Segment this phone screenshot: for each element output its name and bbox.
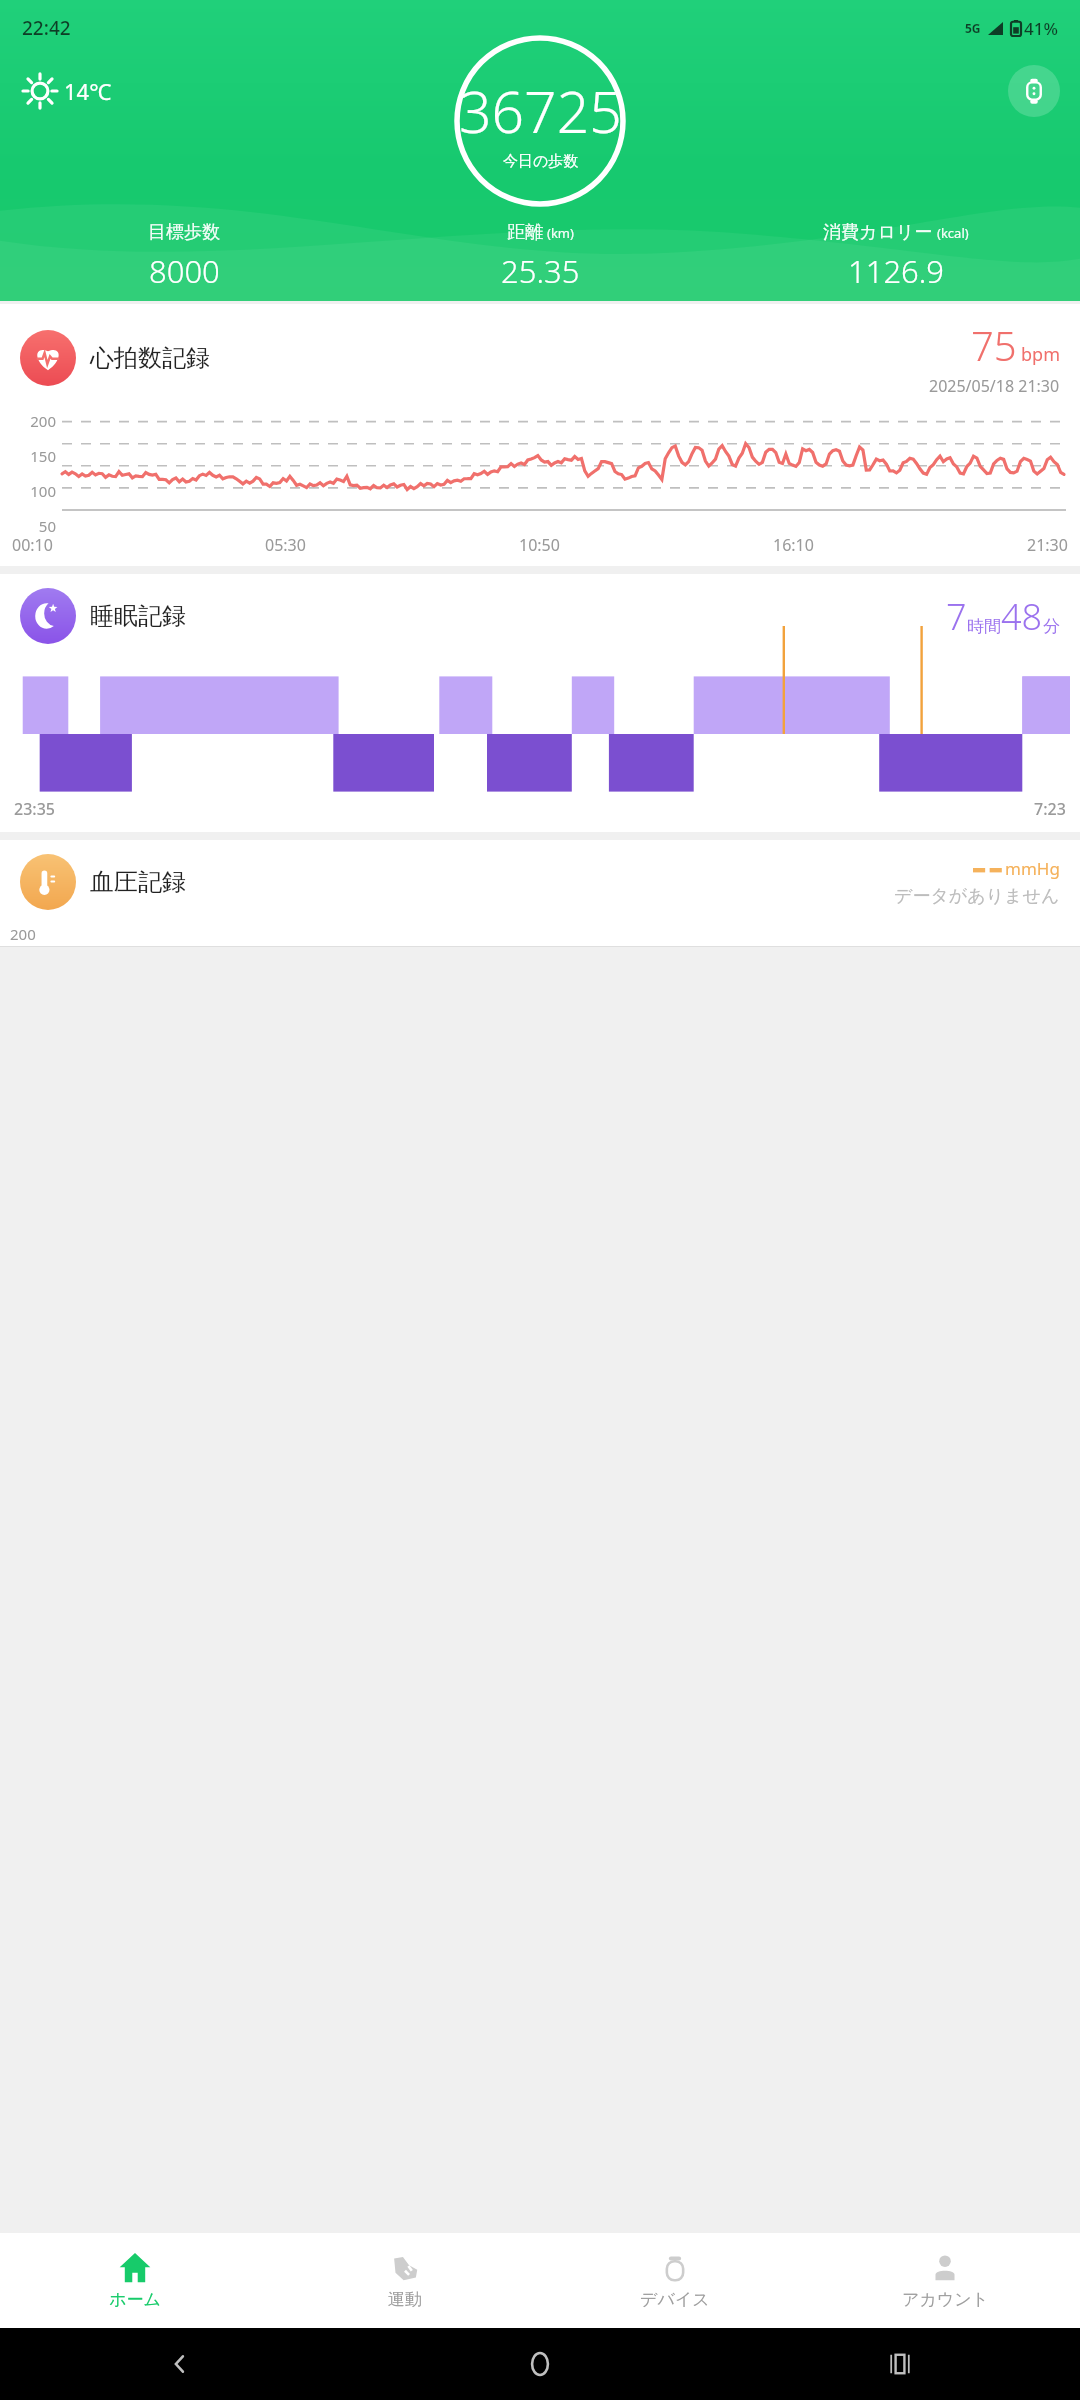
staticText: デバイス	[640, 2289, 710, 2310]
staticText: 14℃	[64, 76, 112, 106]
staticText: 運動	[388, 2289, 422, 2310]
button[interactable]: アカウント	[810, 2233, 1080, 2328]
button[interactable]: 消費カロリー	[718, 221, 1074, 292]
staticText: 25.35	[501, 250, 580, 292]
button[interactable]: 目標歩数	[6, 221, 362, 292]
staticText: 41%	[1024, 17, 1058, 40]
staticText: データがありません	[894, 885, 1060, 908]
staticText: bpm	[1021, 342, 1060, 367]
staticText: 75	[971, 318, 1017, 372]
button[interactable]: デバイス	[1008, 65, 1060, 117]
staticText: 36725	[459, 72, 622, 150]
staticText: ホーム	[109, 2289, 161, 2310]
button[interactable]: ホーム	[0, 2233, 270, 2328]
staticText: 10:50	[519, 534, 560, 556]
staticText: 100	[30, 481, 56, 501]
staticText: 23:35	[14, 798, 55, 820]
staticText: 200	[10, 924, 36, 944]
staticText: 目標歩数	[148, 221, 220, 244]
staticText: 1126.9	[848, 250, 945, 292]
staticText: 00:10	[12, 534, 53, 556]
staticText: 8000	[149, 250, 220, 292]
staticText: 距離	[507, 221, 543, 244]
button[interactable]: デバイス	[540, 2233, 810, 2328]
staticText: 16:10	[773, 534, 814, 556]
staticText: 22:42	[22, 15, 71, 41]
staticText: 7:23	[1034, 798, 1066, 820]
staticText: 200	[30, 411, 56, 431]
button[interactable]: 心拍数記録	[0, 304, 1080, 566]
staticText: 50	[38, 516, 56, 534]
staticText: 7	[946, 592, 967, 641]
staticText: 150	[30, 446, 56, 466]
button[interactable]: Recents	[720, 2328, 1080, 2400]
button[interactable]: 距離	[362, 221, 718, 292]
staticText: mmHg	[1005, 857, 1060, 880]
staticText: 消費カロリー	[823, 221, 933, 244]
staticText: 分	[1043, 616, 1060, 637]
staticText: 2025/05/18 21:30	[929, 375, 1060, 397]
button[interactable]: Back	[0, 2328, 360, 2400]
staticText: 睡眠記録	[90, 601, 186, 631]
staticText: 血圧記録	[90, 867, 186, 897]
staticText: 心拍数記録	[90, 343, 210, 373]
staticText: 5G	[965, 20, 981, 36]
button[interactable]: 血圧記録	[0, 840, 1080, 947]
staticText: 48	[1001, 592, 1043, 641]
staticText: (km)	[547, 224, 574, 242]
button[interactable]: 36725	[454, 35, 626, 207]
staticText: 今日の歩数	[503, 152, 579, 171]
button[interactable]: 睡眠記録	[0, 574, 1080, 832]
staticText: アカウント	[902, 2289, 989, 2310]
button[interactable]: 運動	[270, 2233, 540, 2328]
staticText: (kcal)	[937, 224, 969, 242]
button[interactable]: Home	[360, 2328, 720, 2400]
button[interactable]: 14℃	[18, 69, 116, 113]
staticText: 時間	[967, 616, 1001, 637]
staticText: 21:30	[1027, 534, 1068, 556]
staticText: 05:30	[265, 534, 306, 556]
